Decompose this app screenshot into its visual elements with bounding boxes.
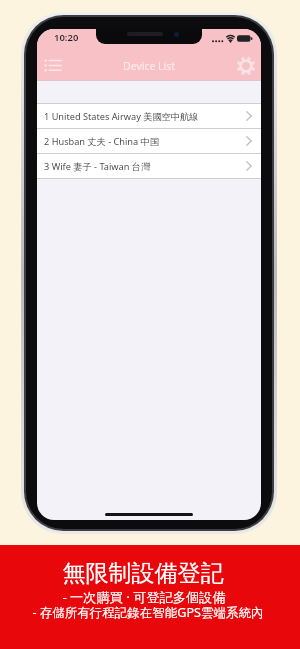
staticText: 1 United States Airway 美國空中航線 <box>44 110 199 123</box>
staticText: 3 Wife 妻子 - Taiwan 台灣 <box>44 160 151 173</box>
staticText: 無限制設備登記 <box>0 559 293 588</box>
staticText: - 一次購買 · 可登記多個設備 <box>0 588 294 606</box>
button[interactable] <box>42 56 64 75</box>
button[interactable]: 3 Wife 妻子 - Taiwan 台灣 <box>37 154 261 178</box>
staticText: - 存儲所有行程記錄在智能GPS雲端系統內 <box>0 604 298 621</box>
button[interactable] <box>235 55 257 77</box>
staticText: 10:20 <box>54 31 79 44</box>
button[interactable]: 2 Husban 丈夫 - China 中国 <box>37 129 261 153</box>
button[interactable]: 1 United States Airway 美國空中航線 <box>37 104 261 128</box>
staticText: Device List <box>123 59 176 73</box>
staticText: 2 Husban 丈夫 - China 中国 <box>44 135 159 148</box>
